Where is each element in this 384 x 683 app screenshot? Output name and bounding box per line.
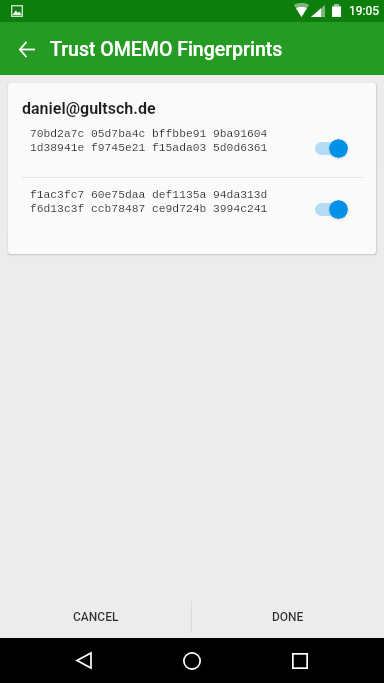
staticText: 1d38941e f9745e21 f15ada03 5d0d6361: [30, 142, 268, 155]
staticText: 19:05: [349, 4, 379, 18]
staticText: CANCEL: [73, 610, 119, 624]
button[interactable]: DONE: [192, 593, 384, 641]
button[interactable]: CANCEL: [0, 593, 191, 641]
staticText: f6d13c3f ccb78487 ce9d724b 3994c241: [30, 203, 268, 216]
button[interactable]: f1ac3fc7 60e75daa def1135a 94da313d: [8, 189, 376, 222]
button[interactable]: Back: [56, 638, 112, 683]
staticText: 70bd2a7c 05d7ba4c bffbbe91 9ba91604: [30, 128, 268, 141]
staticText: f1ac3fc7 60e75daa def1135a 94da313d: [30, 189, 268, 202]
staticText: daniel@gultsch.de: [22, 99, 156, 118]
button[interactable]: Back: [0, 23, 52, 75]
staticText: Trust OMEMO Fingerprints: [50, 38, 283, 61]
button[interactable]: Recent apps: [272, 638, 328, 683]
button[interactable]: 70bd2a7c 05d7ba4c bffbbe91 9ba91604: [8, 128, 376, 161]
staticText: DONE: [272, 610, 304, 624]
button[interactable]: Home: [164, 638, 220, 683]
